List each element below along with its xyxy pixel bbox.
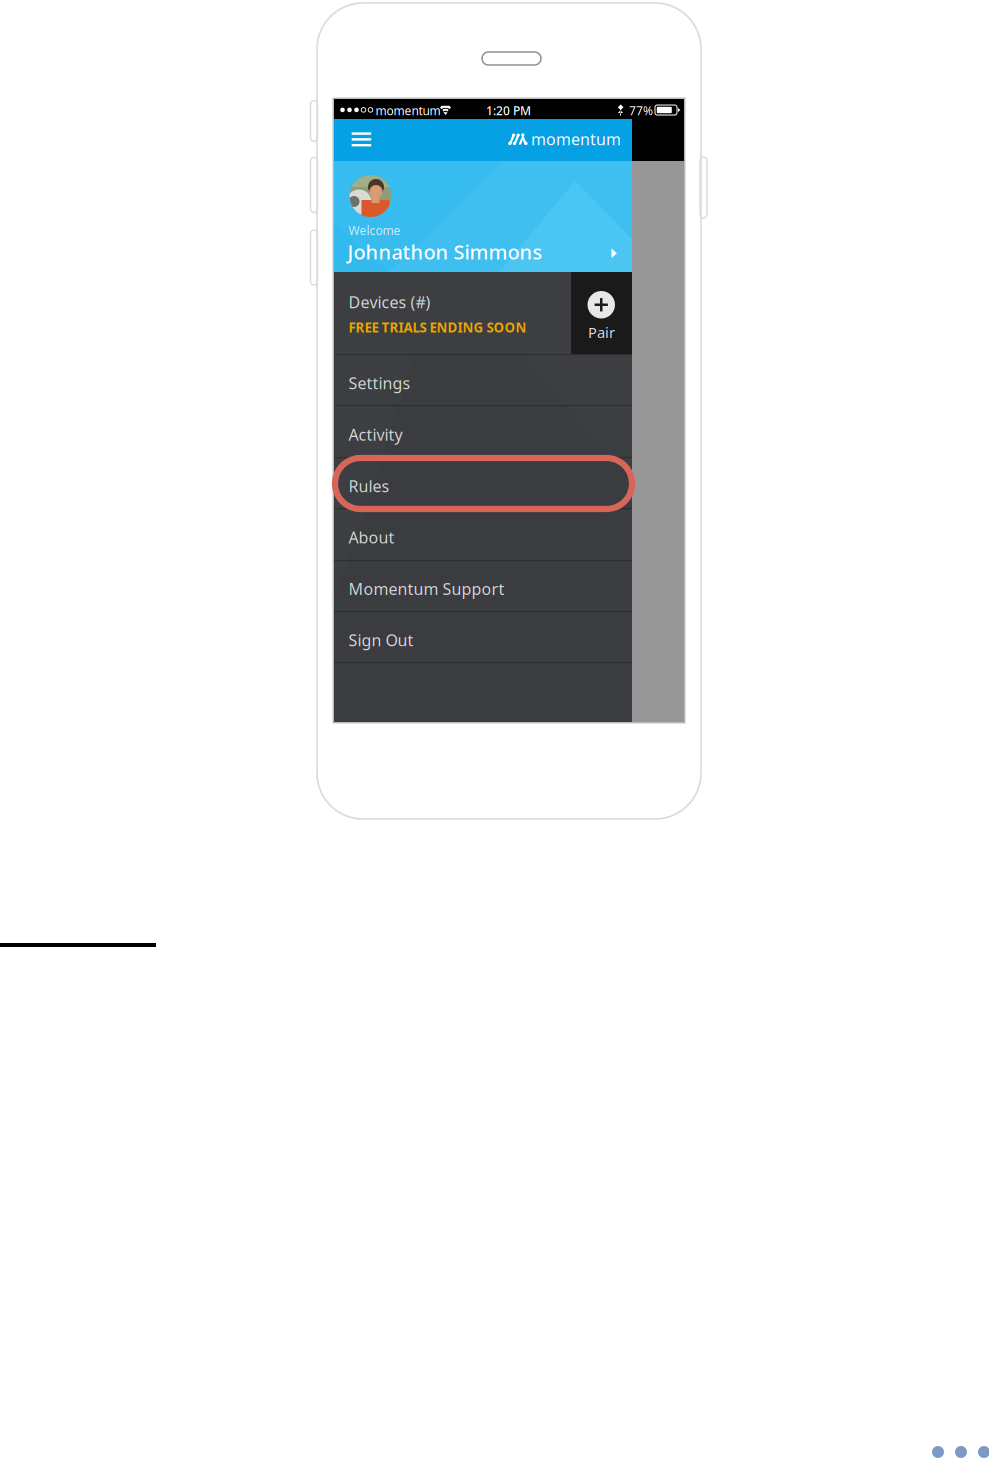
- staticText: 77%: [629, 103, 653, 118]
- staticText: Sign Out: [348, 629, 413, 651]
- button[interactable]: Activity: [334, 405, 632, 457]
- staticText: Welcome: [348, 222, 400, 238]
- staticText: Settings: [348, 372, 410, 394]
- staticText: About: [348, 527, 394, 548]
- staticText: FREE TRIALS ENDING SOON: [348, 318, 526, 336]
- button[interactable]: Menu: [337, 120, 377, 160]
- button[interactable]: Momentum Support: [334, 560, 632, 611]
- staticText: Rules: [348, 475, 389, 496]
- staticText: momentum: [375, 103, 440, 118]
- button[interactable]: Rules: [334, 457, 632, 508]
- staticText: Momentum Support: [348, 578, 504, 599]
- staticText: Pair: [588, 322, 615, 342]
- staticText: Devices (#): [348, 291, 430, 313]
- button[interactable]: Sign Out: [334, 611, 632, 662]
- button[interactable]: Pair: [571, 272, 632, 354]
- button[interactable]: About: [334, 508, 632, 560]
- staticText: 1:20 PM: [486, 103, 531, 118]
- button[interactable]: Settings: [334, 354, 632, 405]
- button[interactable]: Welcome: [334, 161, 632, 272]
- staticText: momentum: [531, 128, 621, 150]
- button[interactable]: Devices (#): [334, 272, 571, 354]
- staticText: Activity: [348, 424, 402, 445]
- staticText: Johnathon Simmons: [347, 238, 542, 265]
